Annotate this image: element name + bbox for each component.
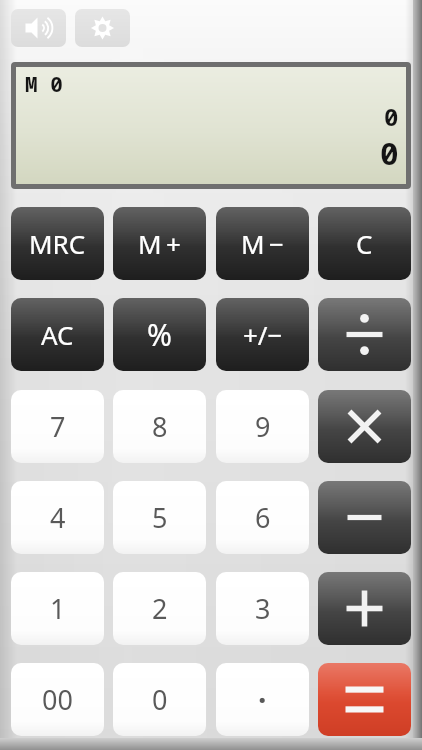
staticText: M − [241,226,284,261]
button[interactable]: C [318,207,411,280]
button[interactable]: 3 [216,572,309,645]
button[interactable]: AC [11,298,104,371]
button[interactable]: 1 [11,572,104,645]
staticText: 5 [152,499,168,536]
button[interactable]: Multiply [318,390,411,463]
staticText: 2 [152,590,168,627]
button[interactable]: 6 [216,481,309,554]
staticText: 3 [255,590,271,627]
button[interactable]: 00 [11,663,104,736]
button[interactable]: Add [318,572,411,645]
staticText: 4 [50,499,66,536]
button[interactable]: Subtract [318,481,411,554]
button[interactable]: 9 [216,390,309,463]
staticText: 6 [255,499,271,536]
button[interactable]: 8 [113,390,206,463]
staticText: M 0 [25,70,63,99]
staticText: 7 [50,408,66,445]
staticText: 9 [255,408,271,445]
button[interactable]: 4 [11,481,104,554]
staticText: AC [41,317,74,352]
button[interactable]: % [113,298,206,371]
button[interactable]: MRC [11,207,104,280]
staticText: MRC [29,226,86,261]
button[interactable]: 2 [113,572,206,645]
staticText: · [258,679,267,720]
button[interactable]: Settings [75,9,130,47]
staticText: 0 [152,681,168,718]
staticText: 00 [42,681,73,718]
button[interactable]: 5 [113,481,206,554]
button[interactable]: 0 [113,663,206,736]
staticText: 1 [50,590,66,627]
staticText: +/− [243,317,283,352]
staticText: M + [138,226,181,261]
button[interactable]: M − [216,207,309,280]
button[interactable]: · [216,663,309,736]
staticText: % [147,314,172,355]
button[interactable]: Sound [11,9,66,47]
button[interactable]: +/− [216,298,309,371]
staticText: 0 [384,100,399,133]
staticText: C [356,226,373,261]
button[interactable]: Equals [318,663,411,736]
staticText: 8 [152,408,168,445]
button[interactable]: M + [113,207,206,280]
button[interactable]: Divide [318,298,411,371]
button[interactable]: 7 [11,390,104,463]
staticText: 0 [380,132,399,174]
